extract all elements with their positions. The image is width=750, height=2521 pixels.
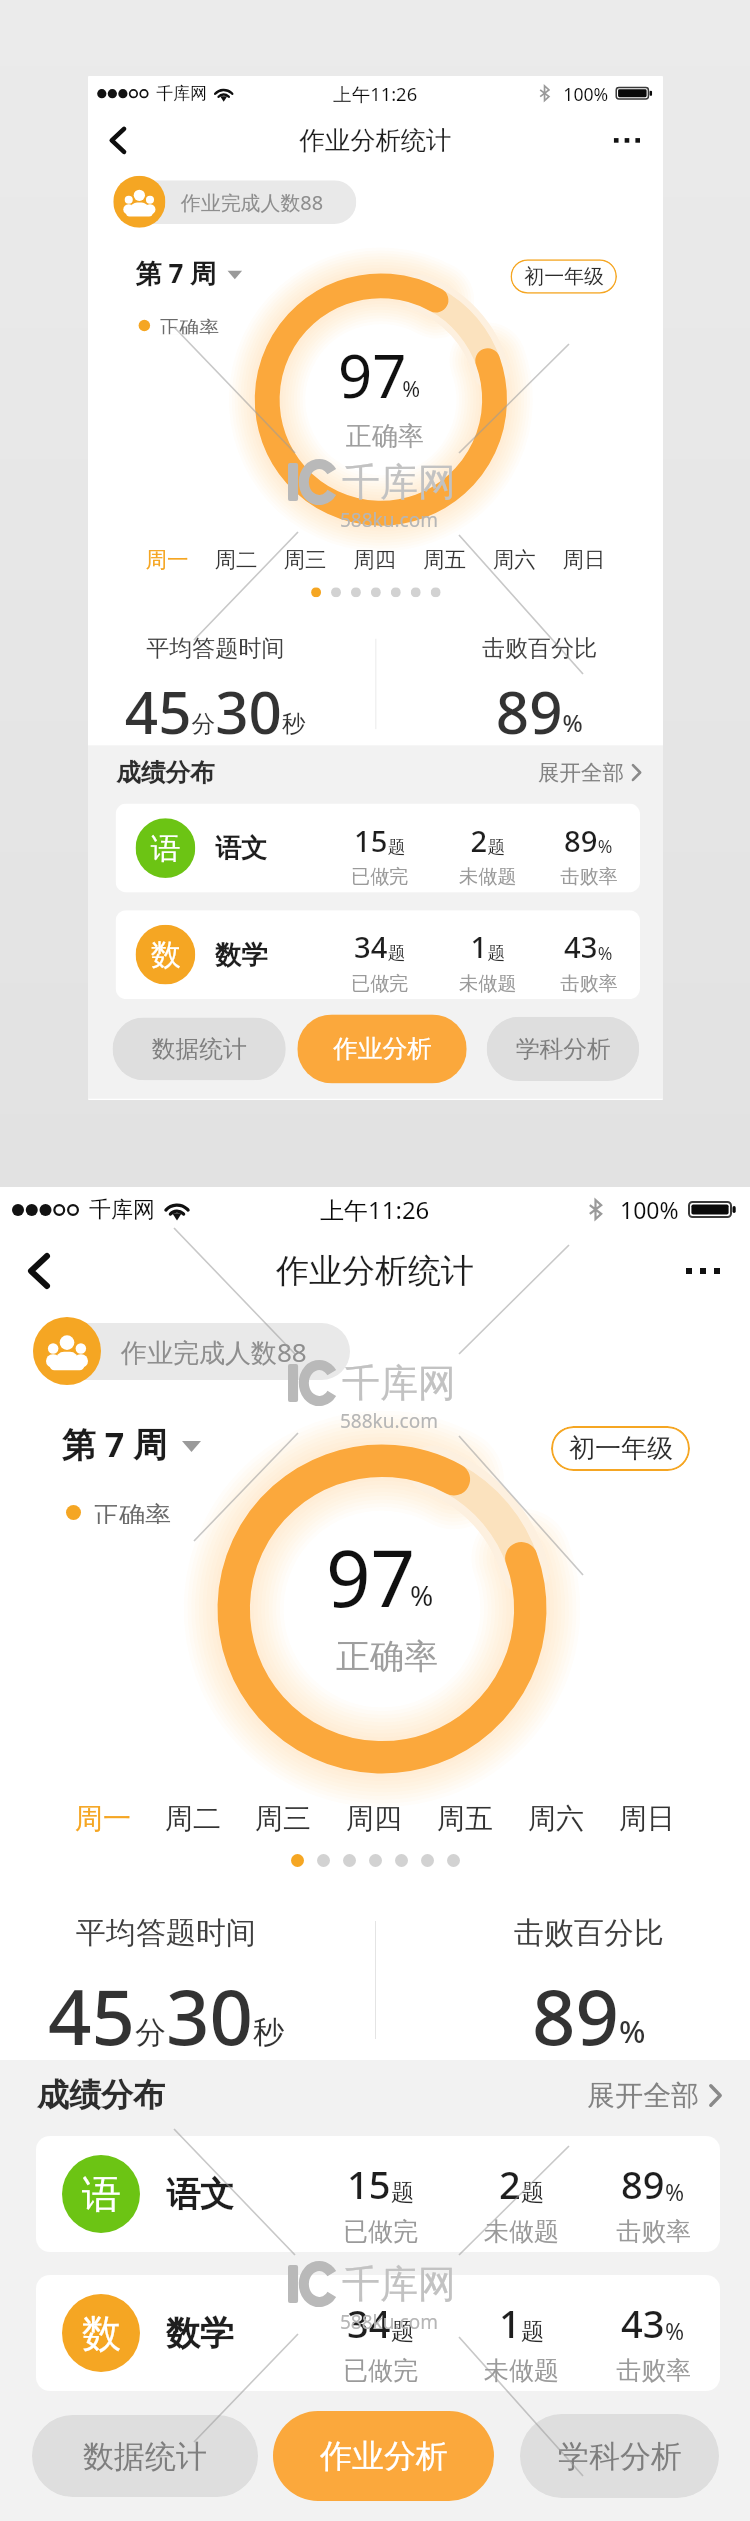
- staticText: 正确率: [93, 1500, 171, 1524]
- button[interactable]: 作业完成人数88: [113, 180, 356, 224]
- staticText: 89: [564, 820, 598, 860]
- staticText: 97: [326, 1524, 416, 1630]
- button[interactable]: 作业完成人数88: [33, 1323, 350, 1380]
- button[interactable]: 周三: [238, 1796, 328, 1841]
- staticText: 43: [621, 2297, 665, 2349]
- staticText: %: [598, 834, 613, 858]
- button[interactable]: Back: [8, 1240, 70, 1302]
- button[interactable]: 周五: [419, 1796, 510, 1841]
- staticText: 已做完: [351, 865, 408, 889]
- button[interactable]: 数据统计: [32, 2415, 258, 2497]
- staticText: 上午11:26: [320, 1193, 430, 1226]
- staticText: 击败百分比: [514, 1914, 664, 1952]
- button[interactable]: More options: [603, 117, 651, 164]
- staticText: 平均答题时间: [76, 1914, 256, 1952]
- staticText: 题: [521, 2178, 544, 2207]
- staticText: 周二: [165, 1801, 221, 1836]
- button[interactable]: 周一: [132, 543, 201, 577]
- button[interactable]: Back: [94, 117, 142, 164]
- staticText: 15: [354, 820, 388, 860]
- staticText: 题: [521, 2317, 544, 2346]
- staticText: 展开全部: [538, 759, 624, 786]
- staticText: %: [665, 2315, 685, 2346]
- staticText: 588ku.com: [340, 2309, 438, 2335]
- button[interactable]: 初一年级: [551, 1426, 690, 1471]
- staticText: 千库网: [342, 2260, 456, 2308]
- button[interactable]: 作业分析: [297, 1014, 467, 1083]
- button[interactable]: 周二: [201, 543, 270, 577]
- staticText: 周一: [75, 1801, 131, 1836]
- staticText: 语: [82, 2170, 121, 2219]
- staticText: 作业完成人数88: [121, 1334, 307, 1370]
- staticText: %: [410, 1576, 434, 1614]
- button[interactable]: 作业分析: [273, 2411, 494, 2501]
- button[interactable]: 周六: [510, 1796, 601, 1841]
- button[interactable]: 周四: [339, 543, 409, 577]
- staticText: 97: [338, 334, 407, 416]
- button[interactable]: 学科分析: [520, 2414, 719, 2498]
- staticText: 45: [125, 672, 191, 745]
- staticText: 34: [347, 2297, 391, 2349]
- staticText: 100%: [563, 81, 608, 105]
- button[interactable]: 周二: [148, 1796, 238, 1841]
- staticText: 周五: [423, 547, 466, 573]
- staticText: 作业分析统计: [276, 1250, 474, 1292]
- staticText: 作业分析: [333, 1034, 431, 1064]
- button[interactable]: 周四: [328, 1796, 419, 1841]
- staticText: 千库网: [156, 83, 207, 104]
- staticText: 数据统计: [83, 2437, 207, 2476]
- button[interactable]: 周日: [601, 1796, 692, 1841]
- button[interactable]: 第 7 周: [62, 1421, 201, 1465]
- staticText: 43: [564, 927, 598, 967]
- staticText: 1: [471, 927, 487, 967]
- staticText: 语文: [166, 2173, 234, 2216]
- button[interactable]: 周五: [409, 543, 479, 577]
- staticText: 数学: [215, 938, 267, 971]
- staticText: 已做完: [351, 971, 408, 995]
- staticText: 周三: [283, 547, 326, 573]
- button[interactable]: 语: [36, 2136, 720, 2252]
- button[interactable]: 展开全部: [538, 753, 641, 792]
- staticText: 击败率: [560, 865, 618, 889]
- staticText: 34: [354, 927, 388, 967]
- button[interactable]: 学科分析: [487, 1017, 639, 1081]
- button[interactable]: 展开全部: [587, 2070, 722, 2121]
- staticText: %: [402, 374, 421, 403]
- button[interactable]: 第 7 周: [135, 255, 242, 289]
- button[interactable]: 周一: [58, 1796, 148, 1841]
- staticText: 千库网: [342, 1359, 456, 1407]
- staticText: 题: [487, 836, 505, 858]
- staticText: 击败百分比: [482, 633, 597, 662]
- staticText: 未做题: [484, 2355, 559, 2386]
- staticText: 已做完: [343, 2355, 418, 2386]
- staticText: 语文: [215, 832, 267, 865]
- staticText: 100%: [620, 1194, 679, 1225]
- button[interactable]: 数: [36, 2275, 720, 2391]
- button[interactable]: More options: [672, 1240, 734, 1302]
- button[interactable]: 语: [116, 804, 640, 892]
- staticText: 上午11:26: [333, 81, 418, 106]
- staticText: 30: [215, 672, 282, 745]
- button[interactable]: 周日: [549, 543, 619, 577]
- staticText: 分: [191, 709, 215, 739]
- staticText: 未做题: [484, 2216, 559, 2247]
- staticText: 击败率: [616, 2216, 691, 2247]
- staticText: 秒: [282, 709, 306, 739]
- button[interactable]: 数据统计: [112, 1017, 286, 1080]
- button[interactable]: 初一年级: [510, 259, 617, 294]
- staticText: 学科分析: [516, 1034, 611, 1064]
- button[interactable]: 周六: [479, 543, 549, 577]
- staticText: 15: [347, 2158, 391, 2210]
- staticText: 周四: [346, 1801, 402, 1836]
- staticText: 未做题: [459, 971, 517, 995]
- staticText: 展开全部: [587, 2078, 699, 2113]
- staticText: 题: [391, 2178, 414, 2207]
- button[interactable]: 周三: [270, 543, 339, 577]
- staticText: %: [563, 707, 583, 739]
- staticText: 初一年级: [524, 264, 604, 289]
- staticText: 周六: [493, 547, 536, 573]
- button[interactable]: 数: [116, 910, 640, 999]
- staticText: 秒: [253, 2013, 284, 2052]
- staticText: 成绩分布: [37, 2075, 165, 2115]
- staticText: 数: [82, 2309, 121, 2358]
